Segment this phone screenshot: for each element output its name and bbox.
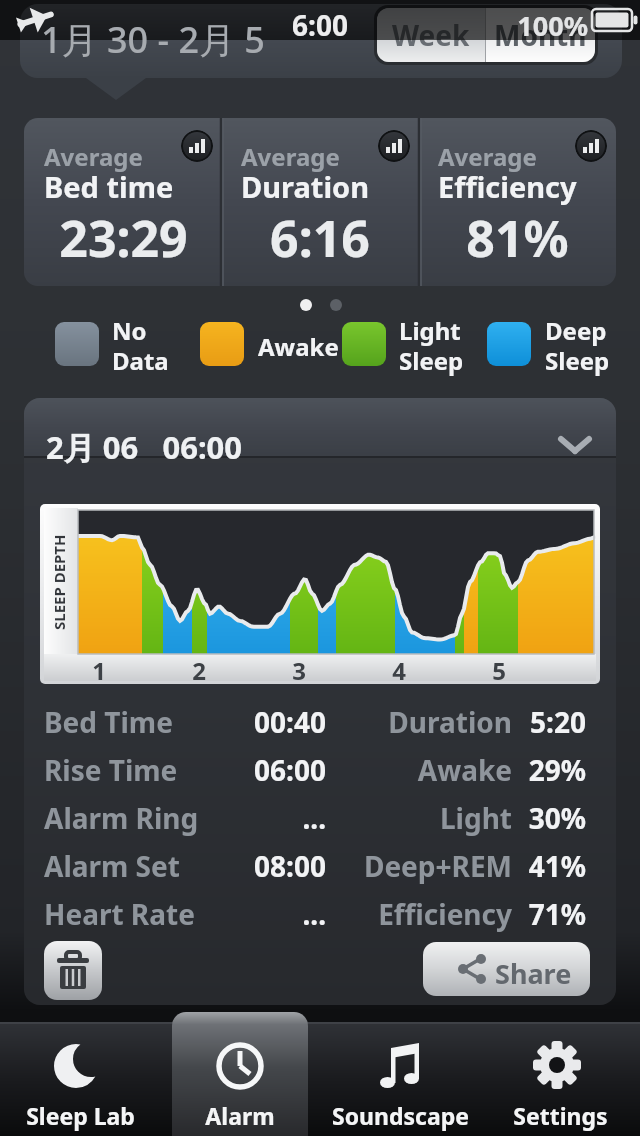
staticText: Duration xyxy=(388,703,512,741)
button[interactable] xyxy=(575,130,607,162)
staticText: 2月 06 06:00 xyxy=(46,426,243,468)
staticText: Alarm Set xyxy=(44,847,180,885)
button[interactable]: Week xyxy=(377,8,485,62)
staticText: 3 xyxy=(292,654,306,687)
staticText: Efficiency xyxy=(378,895,512,933)
staticText: Average xyxy=(438,140,537,173)
button[interactable] xyxy=(378,130,410,162)
staticText: Settings xyxy=(513,1100,608,1131)
staticText: Heart Rate xyxy=(44,895,195,933)
staticText: Efficiency xyxy=(438,167,577,206)
staticText: 23:29 xyxy=(59,204,188,272)
staticText: Rise Time xyxy=(44,751,178,789)
button[interactable]: Month xyxy=(486,8,595,62)
staticText: 4 xyxy=(392,654,406,687)
staticText: Sleep Lab xyxy=(26,1100,135,1131)
staticText: Alarm xyxy=(205,1100,275,1131)
staticText: 41% xyxy=(528,847,586,885)
staticText: Awake xyxy=(258,330,339,363)
staticText: 5 xyxy=(492,654,506,687)
staticText: ... xyxy=(302,799,326,837)
staticText: Bed time xyxy=(44,167,174,206)
staticText: 71% xyxy=(528,895,586,933)
button[interactable] xyxy=(480,1022,640,1136)
staticText: 1 xyxy=(92,654,106,687)
staticText: 00:40 xyxy=(254,703,326,741)
staticText: Duration xyxy=(241,167,370,206)
staticText: ... xyxy=(302,895,326,933)
staticText: 06:00 xyxy=(254,751,326,789)
staticText: Light Sleep xyxy=(399,314,464,377)
staticText: Awake xyxy=(417,751,512,789)
button[interactable] xyxy=(181,130,213,162)
button[interactable] xyxy=(24,398,616,458)
button[interactable] xyxy=(160,1022,320,1136)
staticText: Soundscape xyxy=(332,1100,469,1131)
staticText: 81% xyxy=(466,204,569,272)
staticText: 29% xyxy=(528,751,586,789)
staticText: Bed Time xyxy=(44,703,173,741)
button[interactable] xyxy=(320,1022,480,1136)
staticText: 5:20 xyxy=(530,703,586,741)
staticText: Average xyxy=(241,140,340,173)
staticText: 6:16 xyxy=(270,204,370,272)
staticText: Month xyxy=(494,16,587,54)
staticText: Share xyxy=(495,955,572,992)
staticText: 100% xyxy=(517,7,588,44)
staticText: 2 xyxy=(192,654,206,687)
button[interactable] xyxy=(0,1022,160,1136)
staticText: SLEEP DEPTH xyxy=(49,534,69,630)
staticText: 08:00 xyxy=(254,847,326,885)
staticText: 30% xyxy=(528,799,586,837)
staticText: Average xyxy=(44,140,143,173)
staticText: Week xyxy=(392,16,470,54)
staticText: Deep Sleep xyxy=(545,314,610,377)
staticText: Deep+REM xyxy=(363,847,512,885)
staticText: 1月 30 - 2月 5 xyxy=(41,15,265,64)
button[interactable] xyxy=(44,941,102,1000)
staticText: No Data xyxy=(112,314,169,377)
button[interactable]: Share xyxy=(423,942,590,996)
staticText: Light xyxy=(439,799,512,837)
staticText: 6:00 xyxy=(292,6,348,44)
staticText: Alarm Ring xyxy=(44,799,199,837)
